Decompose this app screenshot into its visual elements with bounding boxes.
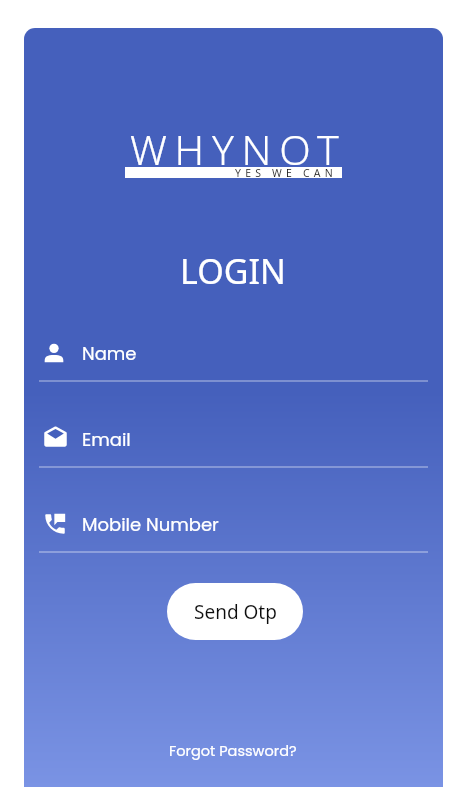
- staticText: LOGIN: [180, 248, 286, 294]
- staticText: Email: [82, 427, 131, 452]
- staticText: WHYNOT: [130, 121, 347, 177]
- staticText: Send Otp: [194, 599, 277, 625]
- staticText: YES WE CAN: [235, 166, 337, 180]
- other: Name: [40, 339, 68, 367]
- button[interactable]: Forgot Password?: [163, 734, 303, 768]
- staticText: Mobile Number: [82, 512, 219, 537]
- other: Email: [42, 423, 69, 450]
- staticText: Name: [82, 341, 137, 366]
- button[interactable]: Send Otp: [167, 583, 303, 640]
- other: Mobile number: [42, 511, 68, 537]
